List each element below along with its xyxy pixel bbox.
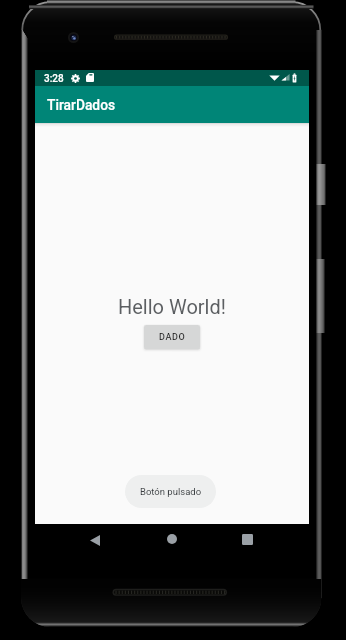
staticText: TirarDados	[47, 97, 116, 113]
button[interactable]: Recent apps	[233, 525, 261, 553]
button[interactable]: Home	[158, 525, 186, 553]
staticText: Botón pulsado	[140, 486, 202, 497]
button[interactable]: Back	[81, 526, 109, 554]
staticText: DADO	[159, 332, 186, 343]
staticText: Hello World!	[118, 295, 226, 318]
button[interactable]: DADO	[144, 325, 200, 349]
staticText: 3:28	[44, 73, 64, 85]
